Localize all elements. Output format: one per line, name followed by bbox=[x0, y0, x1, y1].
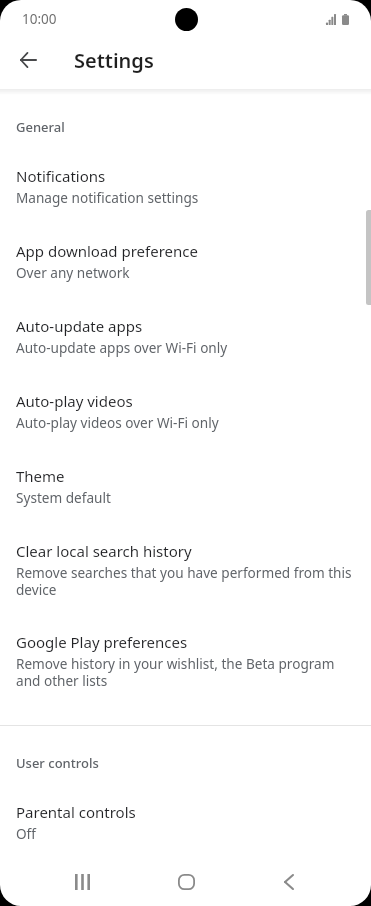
staticText: Parental controls bbox=[16, 802, 136, 822]
staticText: 10:00 bbox=[22, 10, 57, 28]
button[interactable]: Auto-play videos bbox=[0, 371, 371, 446]
button[interactable]: Navigate up bbox=[4, 36, 52, 84]
staticText: Auto-play videos bbox=[16, 391, 133, 411]
staticText: Auto-update apps bbox=[16, 316, 143, 336]
staticText: Settings bbox=[74, 47, 154, 74]
staticText: General bbox=[16, 118, 65, 136]
button[interactable]: Auto-update apps bbox=[0, 296, 371, 371]
button[interactable]: Back bbox=[265, 858, 313, 906]
staticText: Google Play preferences bbox=[16, 632, 188, 652]
button[interactable]: Clear local search history bbox=[0, 521, 371, 612]
button[interactable]: Recent apps bbox=[58, 858, 106, 906]
staticText: Notifications bbox=[16, 166, 106, 186]
button[interactable]: Home bbox=[162, 858, 210, 906]
button[interactable]: Google Play preferences bbox=[0, 612, 371, 704]
staticText: Remove searches that you have performed … bbox=[16, 563, 359, 599]
button[interactable]: App download preference bbox=[0, 221, 371, 296]
button[interactable]: Parental controls bbox=[0, 782, 371, 852]
staticText: System default bbox=[16, 488, 111, 507]
staticText: Theme bbox=[16, 466, 65, 486]
staticText: Clear local search history bbox=[16, 541, 192, 561]
staticText: Manage notification settings bbox=[16, 188, 199, 207]
staticText: Over any network bbox=[16, 263, 130, 282]
staticText: App download preference bbox=[16, 241, 198, 261]
button[interactable]: Theme bbox=[0, 446, 371, 521]
staticText: Auto-play videos over Wi-Fi only bbox=[16, 413, 219, 432]
staticText: Auto-update apps over Wi-Fi only bbox=[16, 338, 228, 357]
staticText: User controls bbox=[16, 754, 99, 772]
button[interactable]: Notifications bbox=[0, 146, 371, 221]
staticText: Off bbox=[16, 824, 36, 843]
staticText: Remove history in your wishlist, the Bet… bbox=[16, 654, 359, 690]
